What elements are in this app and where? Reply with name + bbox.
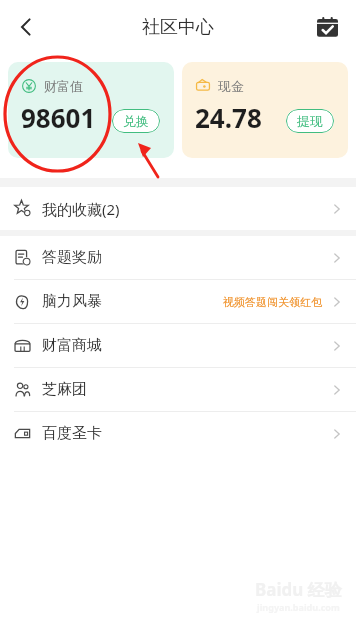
staticText: jingyan.baidu.com — [257, 601, 340, 613]
button[interactable]: 我的收藏(2) — [0, 187, 356, 230]
button[interactable]: 兑换 — [112, 109, 160, 133]
staticText: 社区中心 — [142, 16, 214, 39]
button[interactable]: 答题奖励 — [0, 236, 356, 279]
staticText: 财富值 — [44, 78, 83, 94]
staticText: 提现 — [297, 113, 323, 129]
staticText: 24.78 — [195, 100, 262, 135]
staticText: 百度圣卡 — [42, 424, 102, 443]
staticText: 我的收藏(2) — [42, 199, 120, 219]
button[interactable]: 现金 — [182, 62, 348, 158]
button[interactable]: 财富商城 — [0, 324, 356, 367]
staticText: 脑力风暴 — [42, 292, 102, 311]
button[interactable]: 百度圣卡 — [0, 412, 356, 455]
staticText: 视频答题闯关领红包 — [223, 295, 322, 309]
button[interactable]: 提现 — [286, 109, 334, 133]
button[interactable]: Check in calendar — [306, 6, 348, 48]
staticText: 答题奖励 — [42, 248, 102, 267]
staticText: Baidu 经验 — [255, 578, 342, 601]
staticText: 财富商城 — [42, 336, 102, 355]
button[interactable]: Back — [4, 5, 48, 49]
button[interactable]: 芝麻团 — [0, 368, 356, 411]
button[interactable]: 财富值 — [8, 62, 174, 158]
staticText: 98601 — [21, 100, 96, 135]
staticText: 兑换 — [123, 113, 149, 129]
button[interactable]: 脑力风暴 — [0, 280, 356, 323]
staticText: 芝麻团 — [42, 380, 87, 399]
staticText: 现金 — [218, 78, 244, 94]
